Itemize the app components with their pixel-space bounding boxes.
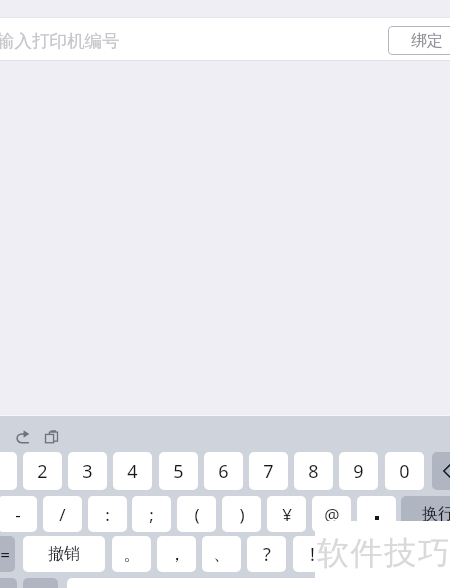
- staticText: ¥: [282, 503, 292, 526]
- staticText: 5: [173, 459, 184, 484]
- button[interactable]: 3: [68, 452, 107, 490]
- staticText: ?: [263, 542, 271, 567]
- button[interactable]: :: [88, 496, 127, 532]
- staticText: (: [194, 503, 200, 526]
- button[interactable]: 8: [294, 452, 333, 490]
- button[interactable]: 2: [23, 452, 62, 490]
- button[interactable]: 6: [204, 452, 243, 490]
- staticText: 换行: [422, 504, 450, 524]
- staticText: ): [239, 503, 245, 526]
- staticText: =: [0, 543, 10, 566]
- staticText: -: [15, 503, 21, 526]
- staticText: 6: [218, 459, 229, 484]
- button[interactable]: /: [43, 496, 82, 532]
- other: Backspace: [443, 460, 450, 482]
- staticText: ，: [168, 543, 186, 566]
- button[interactable]: 5: [159, 452, 198, 490]
- staticText: :: [105, 503, 110, 526]
- button[interactable]: 4: [113, 452, 152, 490]
- staticText: /: [59, 503, 66, 526]
- staticText: @: [324, 503, 340, 526]
- staticText: 撤销: [48, 544, 80, 564]
- button[interactable]: @: [312, 496, 351, 532]
- button[interactable]: ?: [247, 536, 286, 572]
- staticText: 。: [123, 543, 141, 566]
- button[interactable]: ，: [157, 536, 196, 572]
- button[interactable]: [0, 578, 17, 588]
- button[interactable]: Copy: [36, 421, 66, 451]
- button[interactable]: ¥: [267, 496, 306, 532]
- staticText: 2: [37, 459, 48, 484]
- staticText: 7: [263, 459, 274, 484]
- staticText: 0: [399, 459, 410, 484]
- button[interactable]: [23, 578, 58, 588]
- button[interactable]: (: [177, 496, 216, 532]
- button[interactable]: 换行: [401, 496, 450, 532]
- button[interactable]: 。: [112, 536, 151, 572]
- button[interactable]: !: [293, 536, 332, 572]
- staticText: 、: [213, 543, 231, 566]
- button[interactable]: 撤销: [23, 536, 105, 572]
- staticText: 软件技巧: [317, 533, 450, 573]
- staticText: !: [310, 542, 315, 567]
- staticText: 3: [82, 459, 93, 484]
- button[interactable]: Backspace: [432, 452, 450, 490]
- button[interactable]: 9: [339, 452, 378, 490]
- staticText: 8: [308, 459, 319, 484]
- staticText: 绑定: [411, 31, 443, 51]
- button[interactable]: 0: [385, 452, 424, 490]
- button[interactable]: ;: [132, 496, 171, 532]
- button[interactable]: =: [0, 536, 15, 572]
- staticText: 4: [127, 459, 138, 484]
- staticText: 9: [353, 459, 364, 484]
- button[interactable]: 绑定: [388, 26, 450, 55]
- button[interactable]: -: [0, 496, 37, 532]
- button[interactable]: Period: [357, 496, 396, 532]
- button[interactable]: 、: [202, 536, 241, 572]
- staticText: ;: [149, 503, 154, 526]
- button[interactable]: 7: [249, 452, 288, 490]
- button[interactable]: ): [222, 496, 261, 532]
- staticText: 输入打印机编号: [0, 30, 120, 52]
- button[interactable]: Redo: [7, 421, 37, 451]
- button[interactable]: 1: [0, 452, 17, 490]
